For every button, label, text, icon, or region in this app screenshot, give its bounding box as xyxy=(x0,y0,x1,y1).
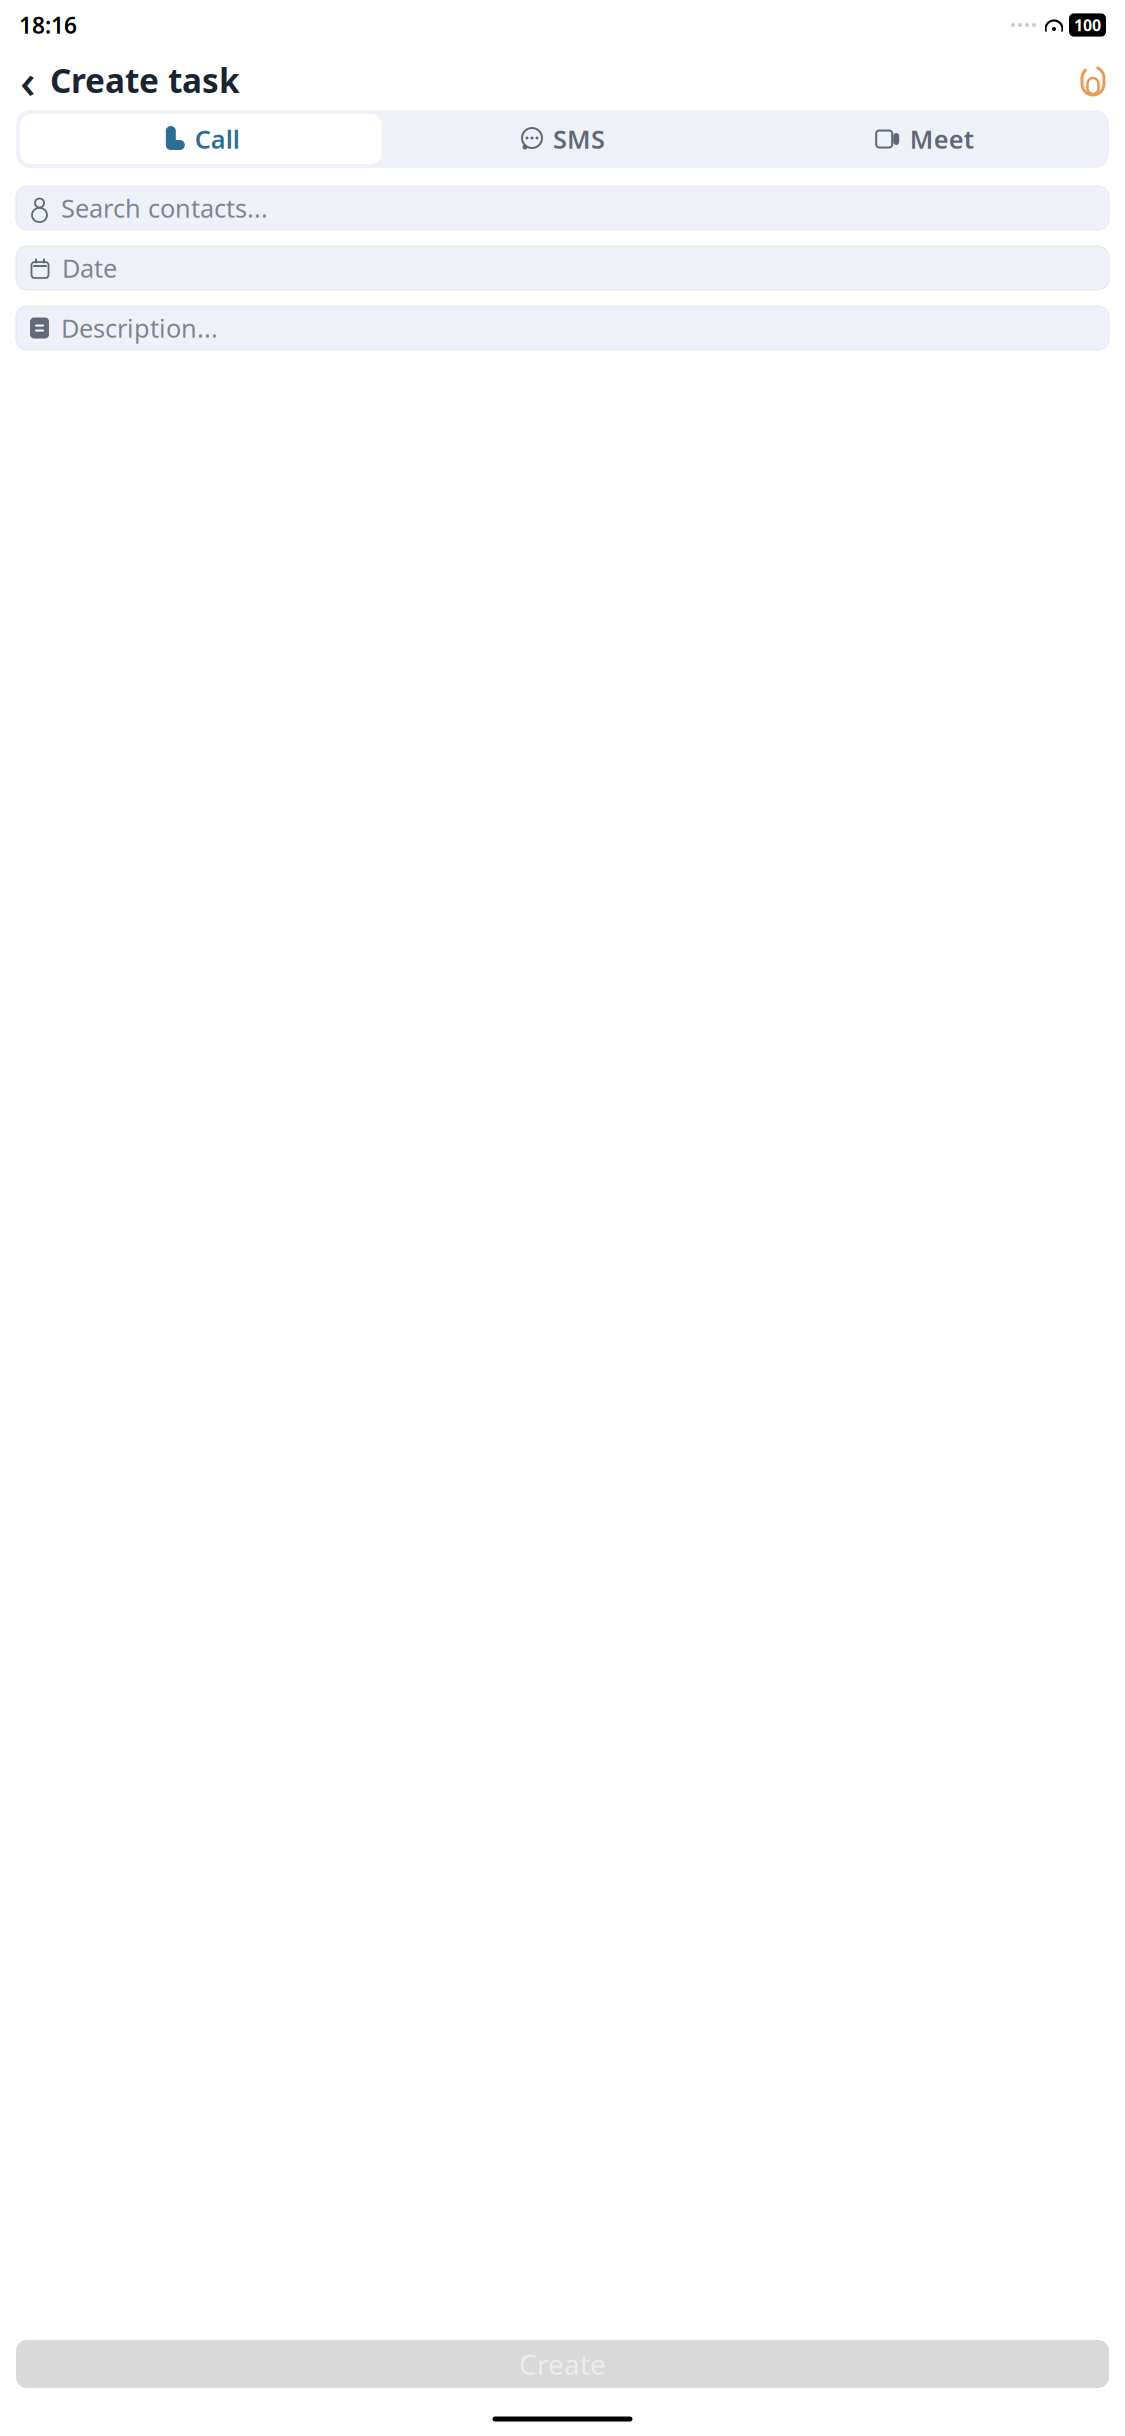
button[interactable]: Back xyxy=(12,59,44,101)
button[interactable]: Call xyxy=(20,114,382,164)
button[interactable]: Meet xyxy=(743,114,1105,164)
staticText: Create task xyxy=(50,58,240,102)
button[interactable]: Search contacts... xyxy=(16,186,1109,230)
staticText: Meet xyxy=(910,122,974,156)
staticText: Call xyxy=(195,122,240,156)
staticText: 100 xyxy=(1074,14,1101,36)
staticText: Description... xyxy=(61,311,218,345)
staticText: Search contacts... xyxy=(61,191,268,225)
button[interactable]: SMS xyxy=(382,114,743,164)
staticText: ‹ xyxy=(20,48,36,112)
staticText: 18:16 xyxy=(19,10,77,40)
button[interactable]: Description... xyxy=(16,306,1109,350)
staticText: Date xyxy=(62,251,117,285)
staticText: Create xyxy=(519,2345,606,2383)
staticText: SMS xyxy=(553,122,605,156)
button[interactable]: Streak xyxy=(1073,59,1113,101)
button[interactable]: Date xyxy=(16,246,1109,290)
